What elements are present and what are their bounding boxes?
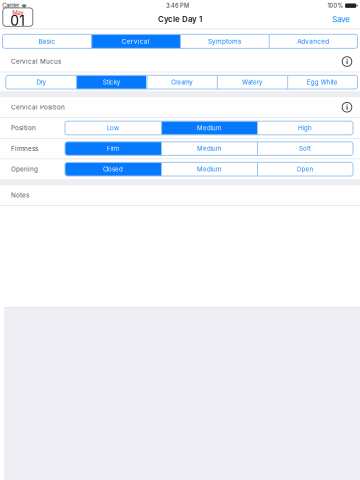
button[interactable]: Date, May 01 — [3, 8, 33, 26]
staticText: Sticky — [103, 78, 120, 86]
button[interactable]: Medium — [161, 142, 257, 155]
staticText: Low — [107, 124, 119, 132]
button[interactable]: Info — [339, 54, 355, 70]
button[interactable]: Medium — [161, 121, 257, 135]
staticText: Egg White — [307, 78, 338, 86]
staticText: Save — [332, 14, 350, 24]
button[interactable]: Dry — [6, 75, 76, 89]
staticText: Creamy — [171, 78, 192, 86]
staticText: Medium — [197, 165, 221, 173]
staticText: Watery — [242, 78, 262, 86]
staticText: Carrier — [2, 2, 19, 9]
staticText: Basic — [38, 37, 55, 45]
staticText: Symptoms — [208, 37, 241, 45]
staticText: Cycle Day 1 — [158, 15, 202, 24]
button[interactable]: Advanced — [269, 34, 358, 48]
staticText: Opening — [11, 165, 38, 173]
button[interactable]: Firm — [65, 142, 161, 155]
button[interactable]: Low — [65, 121, 161, 135]
staticText: Cervical Mucus — [11, 58, 61, 65]
button[interactable]: Save — [331, 14, 351, 24]
staticText: Medium — [197, 145, 221, 152]
button[interactable]: Soft — [257, 142, 353, 155]
staticText: Cervical Position — [11, 103, 65, 111]
button[interactable]: Creamy — [146, 75, 217, 89]
button[interactable]: Open — [257, 162, 353, 176]
button[interactable]: Cervical — [91, 34, 180, 48]
button[interactable]: Basic — [2, 34, 91, 48]
button[interactable]: Medium — [161, 162, 257, 176]
button[interactable]: Sticky — [76, 75, 146, 89]
staticText: Closed — [103, 165, 123, 173]
staticText: May — [12, 9, 23, 17]
button[interactable]: Closed — [65, 162, 161, 176]
staticText: Open — [296, 165, 313, 173]
button[interactable]: Watery — [217, 75, 287, 89]
button[interactable]: Egg White — [287, 75, 357, 89]
button[interactable]: High — [257, 121, 353, 135]
staticText: Soft — [299, 145, 311, 152]
staticText: 3:46 PM — [166, 2, 189, 9]
staticText: 01 — [10, 12, 25, 29]
staticText: High — [298, 124, 312, 132]
staticText: Advanced — [297, 37, 329, 45]
button[interactable]: Symptoms — [180, 34, 269, 48]
staticText: 100% — [328, 2, 343, 9]
staticText: Firm — [107, 145, 119, 152]
staticText: Medium — [197, 124, 221, 132]
staticText: Position — [11, 124, 36, 132]
staticText: Dry — [36, 78, 45, 86]
staticText: Cervical — [122, 37, 150, 45]
staticText: Firmness — [11, 145, 38, 152]
staticText: Notes — [11, 191, 29, 199]
button[interactable]: Info — [339, 99, 355, 115]
